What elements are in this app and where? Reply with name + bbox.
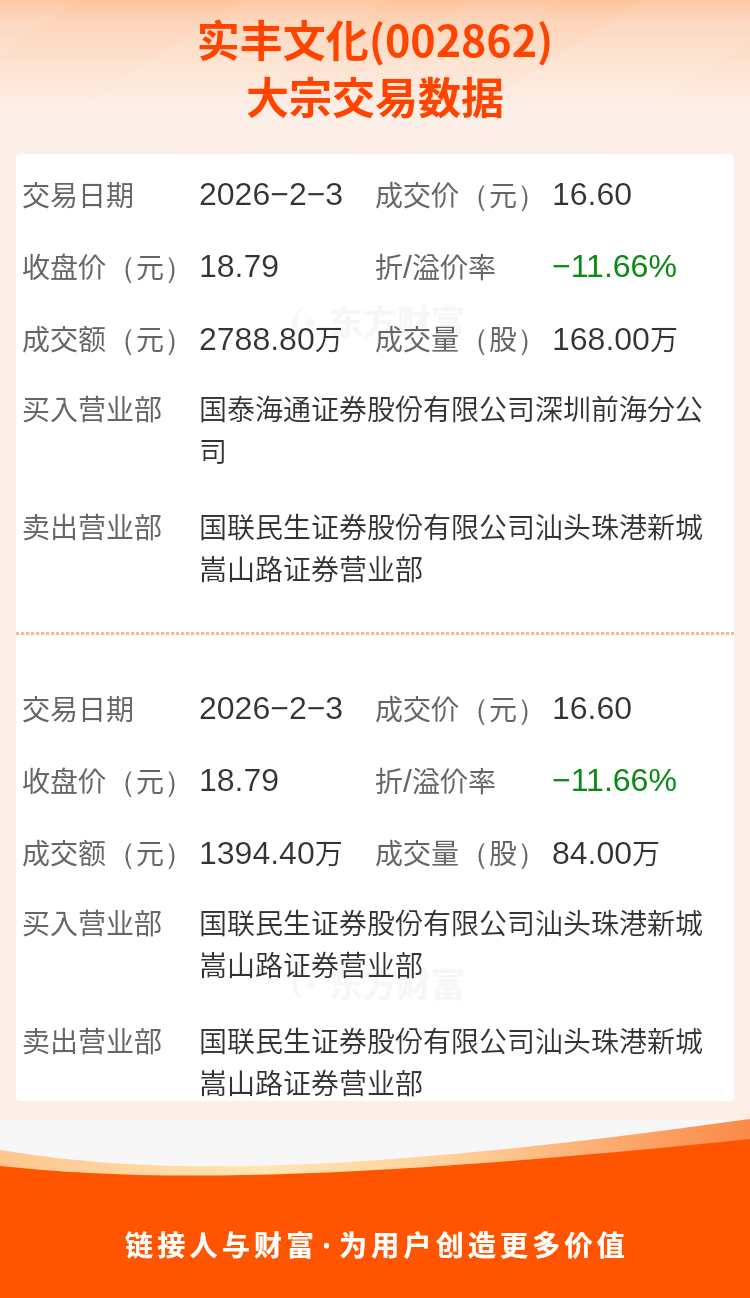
staticText: 成交价（元） xyxy=(375,174,548,215)
staticText: 国联民生证券股份有限公司汕头珠港新城嵩山路证券营业部 xyxy=(199,1020,719,1101)
staticText: 18.79 xyxy=(199,762,280,798)
staticText: 成交额（元） xyxy=(22,318,195,359)
staticText: 成交量（股） xyxy=(375,832,548,873)
staticText: 买入营业部 xyxy=(22,388,163,429)
staticText: 买入营业部 xyxy=(22,902,163,943)
staticText: 收盘价（元） xyxy=(22,246,195,287)
staticText: 国泰海通证券股份有限公司深圳前海分公司 xyxy=(199,388,719,470)
staticText: 收盘价（元） xyxy=(22,760,195,801)
staticText: 链接人与财富·为用户创造更多价值 xyxy=(2,1224,750,1265)
staticText: 18.79 xyxy=(199,248,280,284)
staticText: 成交价（元） xyxy=(375,688,548,729)
staticText: 84.00万 xyxy=(552,832,661,873)
staticText: 16.60 xyxy=(552,176,633,212)
staticText: 国联民生证券股份有限公司汕头珠港新城嵩山路证券营业部 xyxy=(199,902,719,984)
staticText: −11.66% xyxy=(552,248,677,284)
staticText: −11.66% xyxy=(552,762,677,798)
staticText: 折/溢价率 xyxy=(375,246,496,287)
staticText: 1394.40万 xyxy=(199,832,343,873)
staticText: 国联民生证券股份有限公司汕头珠港新城嵩山路证券营业部 xyxy=(199,506,719,588)
staticText: 2026−2−3 xyxy=(199,690,344,726)
staticText: 折/溢价率 xyxy=(375,760,496,801)
staticText: 交易日期 xyxy=(22,174,135,215)
staticText: 2788.80万 xyxy=(199,318,343,359)
staticText: 成交量（股） xyxy=(375,318,548,359)
staticText: 卖出营业部 xyxy=(22,1020,163,1061)
staticText: 16.60 xyxy=(552,690,633,726)
staticText: 2026−2−3 xyxy=(199,176,344,212)
staticText: 168.00万 xyxy=(552,318,678,359)
staticText: 成交额（元） xyxy=(22,832,195,873)
staticText: 卖出营业部 xyxy=(22,506,163,547)
staticText: 实丰文化(002862) 大宗交易数据 xyxy=(0,7,750,126)
staticText: 东方财富 xyxy=(329,296,465,345)
staticText: 交易日期 xyxy=(22,688,135,729)
staticText: 东方财富 xyxy=(329,958,465,1007)
